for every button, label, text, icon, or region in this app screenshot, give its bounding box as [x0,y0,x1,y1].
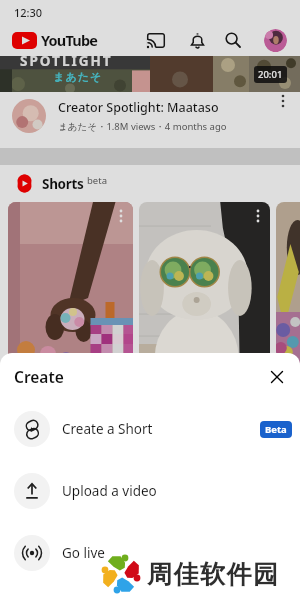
button[interactable]: SPOTLIGHT [0,56,300,92]
staticText: Creator Spotlight: Maataso [58,99,219,116]
staticText: beta [87,174,107,187]
button[interactable] [8,202,133,600]
button[interactable]: Creator Spotlight: Maataso [0,92,300,145]
staticText: YouTube [41,30,98,50]
staticText: Create a Short [62,420,153,438]
button[interactable] [215,24,251,56]
button[interactable] [179,24,215,56]
staticText: まあたそ・1.8M views・4 months ago [58,120,227,133]
staticText: Upload a video [62,482,157,500]
staticText: Shorts [42,175,84,193]
button[interactable] [261,361,293,393]
button[interactable]: Go live [0,522,300,584]
button[interactable] [139,202,270,600]
button[interactable] [12,32,37,49]
staticText: Create [14,366,64,387]
button[interactable]: Upload a video [0,460,300,522]
staticText: 周佳软件园 [146,559,279,590]
staticText: Beta [265,423,287,436]
button[interactable] [264,29,287,52]
staticText: 12:30 [14,5,43,20]
staticText: 周佳软件园 [148,559,281,590]
button[interactable] [270,92,296,118]
staticText: 周佳软件园 [147,560,280,591]
staticText: Go live [62,544,105,562]
staticText: 周佳软件园 [147,559,280,590]
staticText: まあたそ [53,70,103,84]
button[interactable] [138,24,174,56]
staticText: 20:01 [258,68,283,81]
button[interactable]: Create a Short [0,398,300,460]
staticText: 周佳软件园 [147,558,280,589]
button[interactable] [276,202,300,600]
staticText: SPOTLIGHT [20,56,113,70]
